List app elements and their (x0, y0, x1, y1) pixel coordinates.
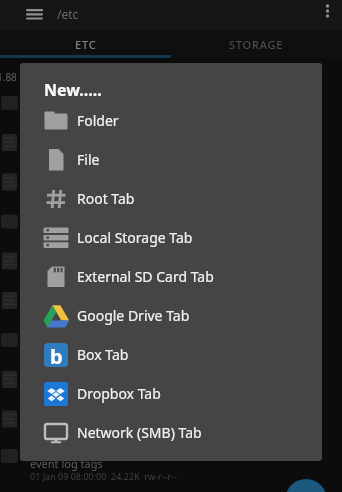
staticText: STORAGE (229, 37, 284, 52)
button[interactable]: External SD Card Tab (20, 257, 322, 296)
button[interactable]: Folder (20, 101, 322, 140)
staticText: Folder (77, 111, 119, 130)
button[interactable] (316, 0, 340, 24)
button[interactable]: File (20, 140, 322, 179)
staticText: External SD Card Tab (77, 267, 214, 286)
staticText: Box Tab (77, 345, 129, 364)
button[interactable]: STORAGE (171, 30, 342, 58)
staticText: Local Storage Tab (77, 228, 193, 247)
button[interactable]: Dropbox Tab (20, 374, 322, 413)
staticText: Network (SMB) Tab (77, 423, 202, 442)
staticText: 01 Jan 09 08:00:00 24.22K rw-r--r-- (30, 470, 178, 482)
button[interactable]: Root Tab (20, 179, 322, 218)
button[interactable]: Local Storage Tab (20, 218, 322, 257)
staticText: ETC (75, 37, 97, 52)
button[interactable]: Network (SMB) Tab (20, 413, 322, 452)
button[interactable]: Google Drive Tab (20, 296, 322, 335)
button[interactable]: b (20, 335, 322, 374)
staticText: File (77, 150, 100, 169)
button[interactable]: ETC (0, 30, 171, 58)
button[interactable] (22, 4, 48, 26)
staticText: New..... (44, 79, 102, 101)
staticText: /etc (57, 6, 79, 22)
staticText: 1.88 (0, 70, 17, 84)
staticText: event log tags (30, 456, 103, 471)
staticText: Dropbox Tab (77, 384, 161, 403)
staticText: b (50, 343, 63, 367)
staticText: Root Tab (77, 189, 135, 208)
staticText: Google Drive Tab (77, 306, 190, 325)
button[interactable] (285, 479, 327, 492)
